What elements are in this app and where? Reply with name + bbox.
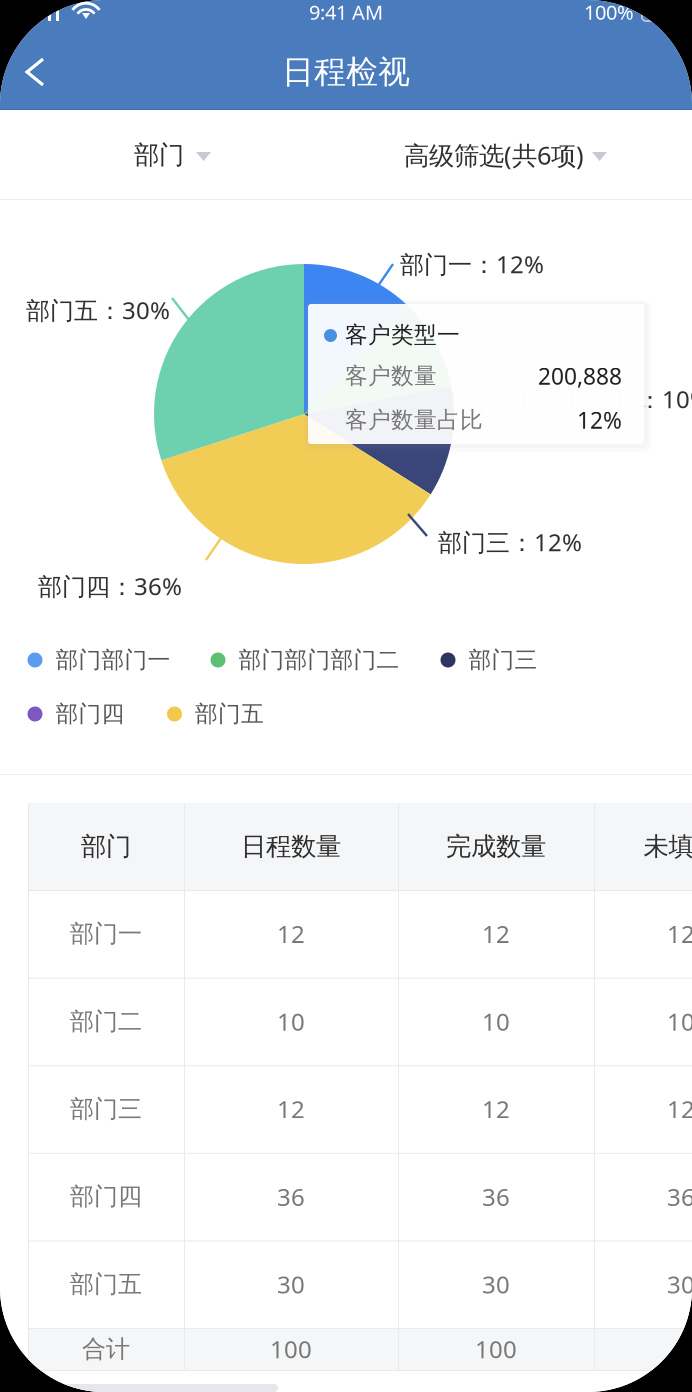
staticText: 部门一 xyxy=(70,919,142,949)
staticText: 部门一：12% xyxy=(400,248,544,280)
staticText: 客户数量 xyxy=(345,362,437,390)
staticText: 36 xyxy=(277,1181,305,1213)
button[interactable]: 部门 xyxy=(0,110,346,200)
staticText: 30 xyxy=(482,1268,510,1300)
staticText: 部门五：30% xyxy=(26,294,170,326)
staticText: 36 xyxy=(482,1181,510,1213)
staticText: 30 xyxy=(667,1268,692,1300)
staticText: 部门三：12% xyxy=(438,526,582,558)
staticText: 36 xyxy=(667,1181,692,1213)
staticText: 100 xyxy=(475,1333,517,1365)
staticText: 部门三 xyxy=(468,646,537,674)
staticText: 12 xyxy=(277,918,305,950)
staticText: 100 xyxy=(270,1333,312,1365)
staticText: 部门四：36% xyxy=(38,570,182,602)
staticText: 未填写 xyxy=(643,831,692,862)
staticText: 12 xyxy=(482,1093,510,1125)
staticText: 部门 xyxy=(134,139,184,170)
staticText: 部门部门部门二 xyxy=(480,384,648,414)
staticText: 100% xyxy=(584,0,634,25)
staticText: 30 xyxy=(277,1268,305,1300)
staticText: 完成数量 xyxy=(446,831,546,862)
staticText: 12 xyxy=(482,918,510,950)
staticText: 合计 xyxy=(82,1334,130,1364)
staticText: 10 xyxy=(482,1005,510,1037)
staticText: 12% xyxy=(577,405,622,435)
staticText: 客户数量占比 xyxy=(345,406,483,434)
button[interactable]: 高级筛选(共6项) xyxy=(346,110,692,200)
staticText: 部门部门部门二 xyxy=(238,646,399,674)
staticText: 部门五 xyxy=(70,1269,142,1299)
staticText: 12 xyxy=(667,918,692,950)
staticText: 部门 xyxy=(81,831,131,862)
staticText: 高级筛选(共6项) xyxy=(404,138,584,172)
staticText: 部门四 xyxy=(70,1182,142,1211)
staticText: 部门三 xyxy=(70,1094,142,1124)
staticText: 部门二 xyxy=(70,1007,142,1036)
staticText: 200,888 xyxy=(538,361,622,391)
staticText: 部门部门一 xyxy=(55,646,170,674)
staticText: 10 xyxy=(667,1005,692,1037)
staticText: 日程检视 xyxy=(282,52,410,92)
staticText: 12 xyxy=(667,1093,692,1125)
staticText: 客户类型一 xyxy=(345,321,460,349)
button[interactable]: Back xyxy=(2,39,78,105)
staticText: 部门四 xyxy=(55,700,124,728)
staticText: 12 xyxy=(277,1093,305,1125)
staticText: ：10% xyxy=(638,383,692,415)
staticText: 9:41 AM xyxy=(309,0,383,25)
staticText: 10 xyxy=(277,1005,305,1037)
staticText: 部门五 xyxy=(195,700,264,728)
staticText: 日程数量 xyxy=(241,831,341,862)
